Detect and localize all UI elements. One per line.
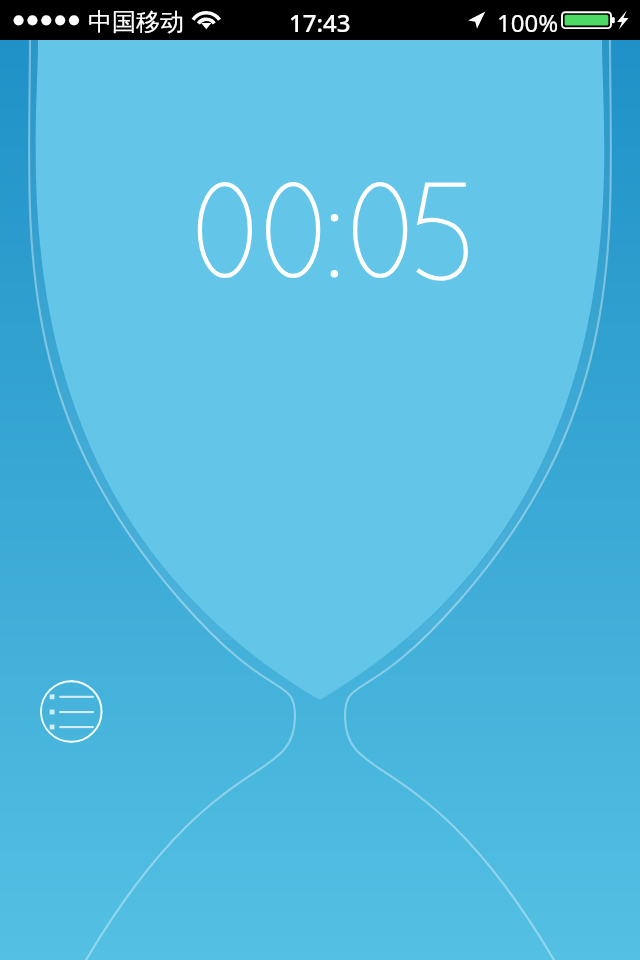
button[interactable]: Timer list: [40, 680, 103, 743]
staticText: 中国移动: [88, 7, 184, 37]
staticText: 100%: [497, 6, 559, 39]
staticText: 17:43: [289, 6, 351, 39]
